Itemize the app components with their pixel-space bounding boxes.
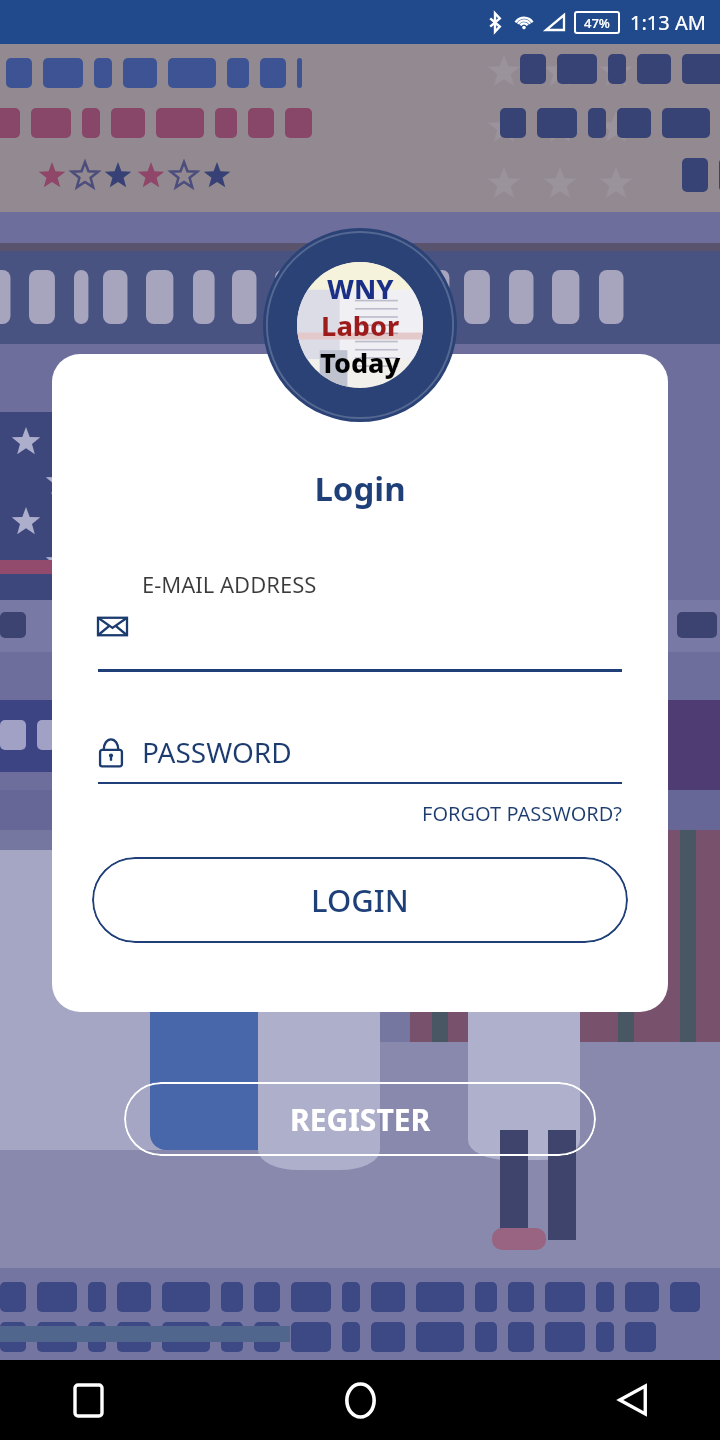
staticText: LOGIN <box>311 879 409 921</box>
staticText: PASSWORD <box>142 733 292 771</box>
staticText: Login <box>52 466 668 511</box>
staticText: Today <box>320 344 401 381</box>
staticText: REGISTER <box>290 1099 431 1140</box>
button[interactable] <box>98 615 622 669</box>
button[interactable]: Back <box>600 1368 664 1432</box>
button[interactable]: PASSWORD <box>98 728 622 776</box>
staticText: E-MAIL ADDRESS <box>142 569 317 599</box>
button[interactable]: Home <box>328 1368 392 1432</box>
button[interactable]: WNY Labor Today logo <box>263 228 457 422</box>
staticText: Labor <box>321 307 400 344</box>
staticText: 47% <box>584 14 610 32</box>
button[interactable]: LOGIN <box>92 857 628 943</box>
staticText: 1:13 AM <box>630 9 706 36</box>
button[interactable]: FORGOT PASSWORD? <box>98 800 622 827</box>
button[interactable]: Recent apps <box>56 1368 120 1432</box>
button[interactable]: REGISTER <box>124 1082 596 1156</box>
staticText: WNY <box>327 270 394 307</box>
